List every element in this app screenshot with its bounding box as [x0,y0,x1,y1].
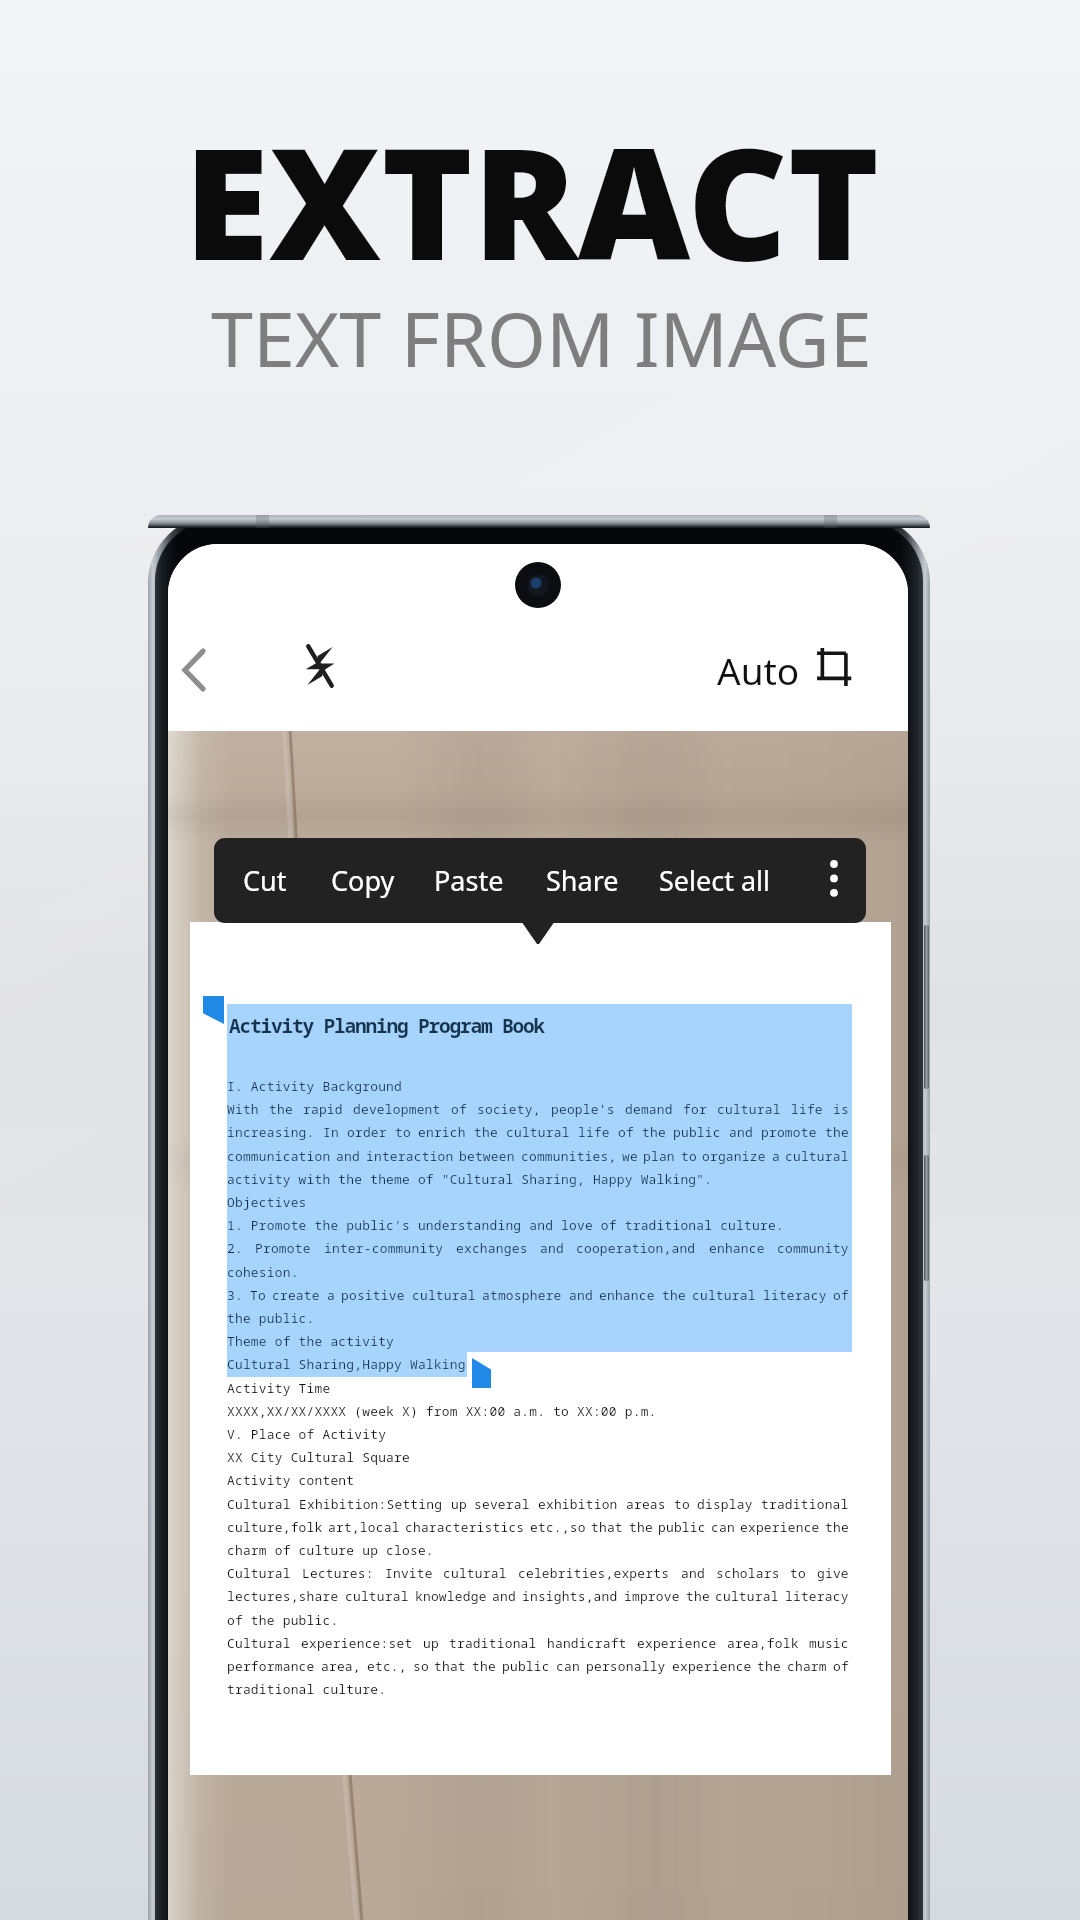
staticText: cultural [345,1587,409,1605]
staticText: Exhibition:Setting [299,1495,443,1513]
staticText: of [618,1123,634,1141]
button[interactable]: Auto [717,645,805,687]
button[interactable]: Flash off [305,645,335,687]
button[interactable]: Share [537,838,627,923]
staticText: With [227,1100,259,1118]
staticText: experience:set [301,1634,413,1652]
staticText: the [642,1123,666,1141]
staticText: the [474,1123,498,1141]
staticText: Auto [717,645,800,687]
staticText: cultural [785,1147,849,1165]
staticText: performance [227,1657,315,1675]
staticText: to [790,1564,806,1582]
staticText: 2. [227,1239,243,1257]
staticText: experience [637,1634,717,1652]
staticText: Cut [243,862,287,899]
staticText: Cultural [227,1495,291,1513]
staticText: cultural [715,1587,779,1605]
staticText: so [413,1657,429,1675]
button[interactable]: Back [179,648,207,692]
staticText: and [729,1123,753,1141]
staticText: public [658,1518,706,1536]
staticText: promote [761,1123,817,1141]
button[interactable]: Copy [322,838,403,923]
staticText: positive [341,1286,405,1304]
staticText: cooperation,and [576,1239,696,1257]
staticText: a [327,1286,335,1304]
button[interactable]: Selection start handle [203,996,224,1024]
staticText: Paste [434,862,504,899]
staticText: to [681,1147,697,1165]
staticText: cultural [692,1286,756,1304]
staticText: enrich [418,1123,466,1141]
staticText: etc., [367,1657,407,1675]
staticText: culture,folk [227,1518,323,1536]
staticText: Select all [659,862,771,899]
staticText: enhance [709,1239,765,1257]
staticText: of the public. [227,1611,339,1629]
staticText: organize [702,1147,766,1165]
staticText: Invite [385,1564,433,1582]
staticText: charm [787,1657,827,1675]
staticText: to [674,1495,690,1513]
staticText: of [451,1100,467,1118]
staticText: Objectives [227,1193,307,1211]
staticText: that [434,1657,466,1675]
button[interactable]: Paste [423,838,514,923]
staticText: community [777,1239,849,1257]
staticText: communication [227,1147,331,1165]
staticText: cohesion. [227,1263,299,1281]
staticText: plan [643,1147,675,1165]
staticText: for [683,1100,707,1118]
staticText: exhibition [538,1495,618,1513]
staticText: of [833,1657,849,1675]
staticText: society, [477,1100,541,1118]
staticText: people's [551,1100,615,1118]
button[interactable]: Cut [233,838,297,923]
staticText: the public. [227,1309,315,1327]
staticText: between [459,1147,515,1165]
staticText: we [622,1147,638,1165]
staticText: Share [546,862,619,899]
staticText: inter-community [324,1239,444,1257]
staticText: cultural [412,1286,476,1304]
staticText: the [472,1657,496,1675]
staticText: traditional [449,1634,537,1652]
staticText: cultural [717,1100,781,1118]
staticText: Activity content [227,1471,355,1489]
staticText: Activity Planning Program Book [229,1012,545,1039]
staticText: TEXT FROM IMAGE [211,286,872,389]
staticText: art,local [328,1518,400,1536]
staticText: exchanges [456,1239,528,1257]
staticText: EXTRACT [184,94,880,305]
staticText: can [711,1518,735,1536]
staticText: the [269,1100,293,1118]
staticText: 3. [227,1286,243,1304]
button[interactable]: Select all [650,838,780,923]
staticText: and [569,1286,593,1304]
staticText: that [591,1518,623,1536]
button[interactable]: Crop [814,648,852,686]
staticText: literacy [763,1286,827,1304]
staticText: the [825,1518,849,1536]
staticText: the [757,1657,781,1675]
staticText: is [833,1100,849,1118]
staticText: and [336,1147,360,1165]
staticText: increasing. [227,1123,315,1141]
staticText: the [825,1123,849,1141]
staticText: handicraft [547,1634,627,1652]
staticText: of [833,1286,849,1304]
staticText: cultural [506,1123,570,1141]
staticText: rapid [303,1100,343,1118]
staticText: traditional [761,1495,849,1513]
staticText: demand [625,1100,673,1118]
staticText: several [474,1495,530,1513]
staticText: improve [624,1587,680,1605]
button[interactable]: More options [811,852,857,910]
button[interactable] [190,922,891,1775]
staticText: atmosphere [482,1286,562,1304]
button[interactable]: Selection end handle [472,1358,491,1388]
staticText: Lectures: [302,1564,374,1582]
staticText: XXXX,XX/XX/XXXX (week X) from XX:00 a.m.… [227,1402,657,1420]
staticText: 1. Promote the public's understanding an… [227,1216,784,1234]
